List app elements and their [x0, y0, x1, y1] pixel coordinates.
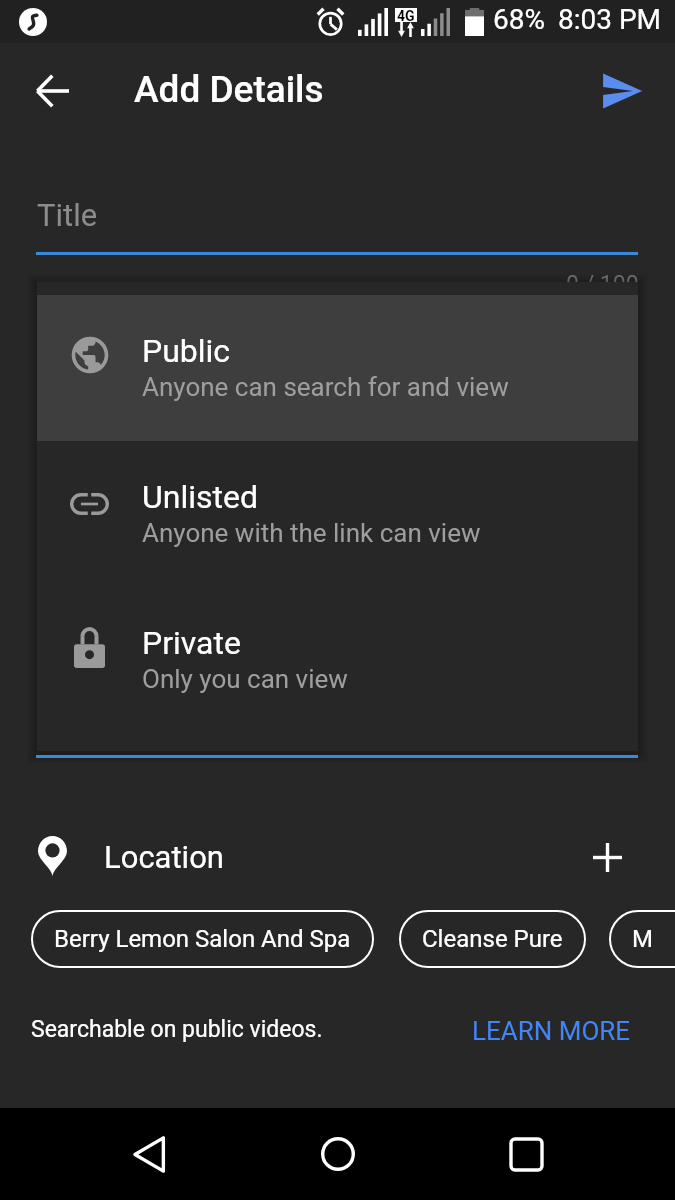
button[interactable]: Send	[594, 63, 650, 119]
staticText: Unlisted	[142, 478, 258, 516]
button[interactable]: Berry Lemon Salon And Spa	[31, 910, 374, 968]
button[interactable]: Location	[104, 826, 254, 888]
staticText: M	[632, 925, 653, 953]
button[interactable]: LEARN MORE	[472, 1016, 631, 1046]
staticText: Cleanse Pure	[422, 925, 563, 953]
button[interactable]: Public	[37, 295, 638, 441]
staticText: Title	[37, 197, 98, 233]
staticText: Only you can view	[142, 664, 348, 694]
staticText: Location	[104, 839, 224, 875]
staticText: 4G	[397, 8, 415, 22]
staticText: Public	[142, 332, 231, 370]
staticText: 8:03 PM	[558, 3, 662, 36]
button[interactable]: Cleanse Pure	[399, 910, 586, 968]
staticText: Anyone with the link can view	[142, 518, 481, 548]
staticText: 0 / 100	[566, 271, 639, 298]
staticText: Private	[142, 624, 241, 662]
button[interactable]: Back	[110, 1115, 188, 1193]
staticText: 68%	[493, 3, 545, 36]
button[interactable]: M	[609, 910, 675, 968]
staticText: Add Details	[134, 68, 324, 111]
staticText: Searchable on public videos.	[31, 1016, 323, 1043]
staticText: Berry Lemon Salon And Spa	[54, 925, 351, 953]
staticText: Anyone can search for and view	[142, 372, 509, 402]
button[interactable]: Title	[36, 190, 638, 255]
button[interactable]: Recent apps	[487, 1115, 565, 1193]
button[interactable]: Back	[26, 64, 80, 118]
button[interactable]: Add location	[581, 831, 633, 883]
button[interactable]: Home	[299, 1115, 377, 1193]
button[interactable]: Private	[37, 587, 638, 733]
button[interactable]: Unlisted	[37, 441, 638, 587]
